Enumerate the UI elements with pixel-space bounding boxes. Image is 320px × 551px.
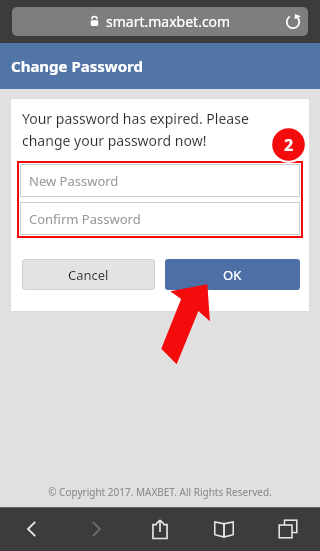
staticText: 2 <box>284 134 294 156</box>
staticText: Cancel <box>68 266 109 284</box>
staticText: OK <box>223 266 242 284</box>
staticText: change your password now! <box>22 131 207 150</box>
staticText: Change Password <box>11 56 143 76</box>
button[interactable]: Address bar <box>12 7 308 36</box>
staticText: New Password <box>29 172 119 190</box>
staticText: Confirm Password <box>29 210 141 228</box>
staticText: © Copyright 2017. MAXBET. All Rights Res… <box>0 485 320 499</box>
button[interactable]: Share <box>128 507 192 551</box>
staticText: Your password has expired. Please <box>22 109 249 128</box>
button[interactable]: New Password <box>20 164 300 197</box>
button[interactable]: Forward <box>64 507 128 551</box>
button[interactable]: Cancel <box>22 259 155 290</box>
staticText: smart.maxbet.com <box>106 12 231 31</box>
button[interactable]: Tabs <box>256 507 320 551</box>
button[interactable]: OK <box>165 259 300 290</box>
button[interactable]: Bookmarks <box>192 507 256 551</box>
button[interactable]: Reload <box>280 9 306 35</box>
button[interactable]: Confirm Password <box>20 202 300 235</box>
button[interactable]: Back <box>0 507 64 551</box>
